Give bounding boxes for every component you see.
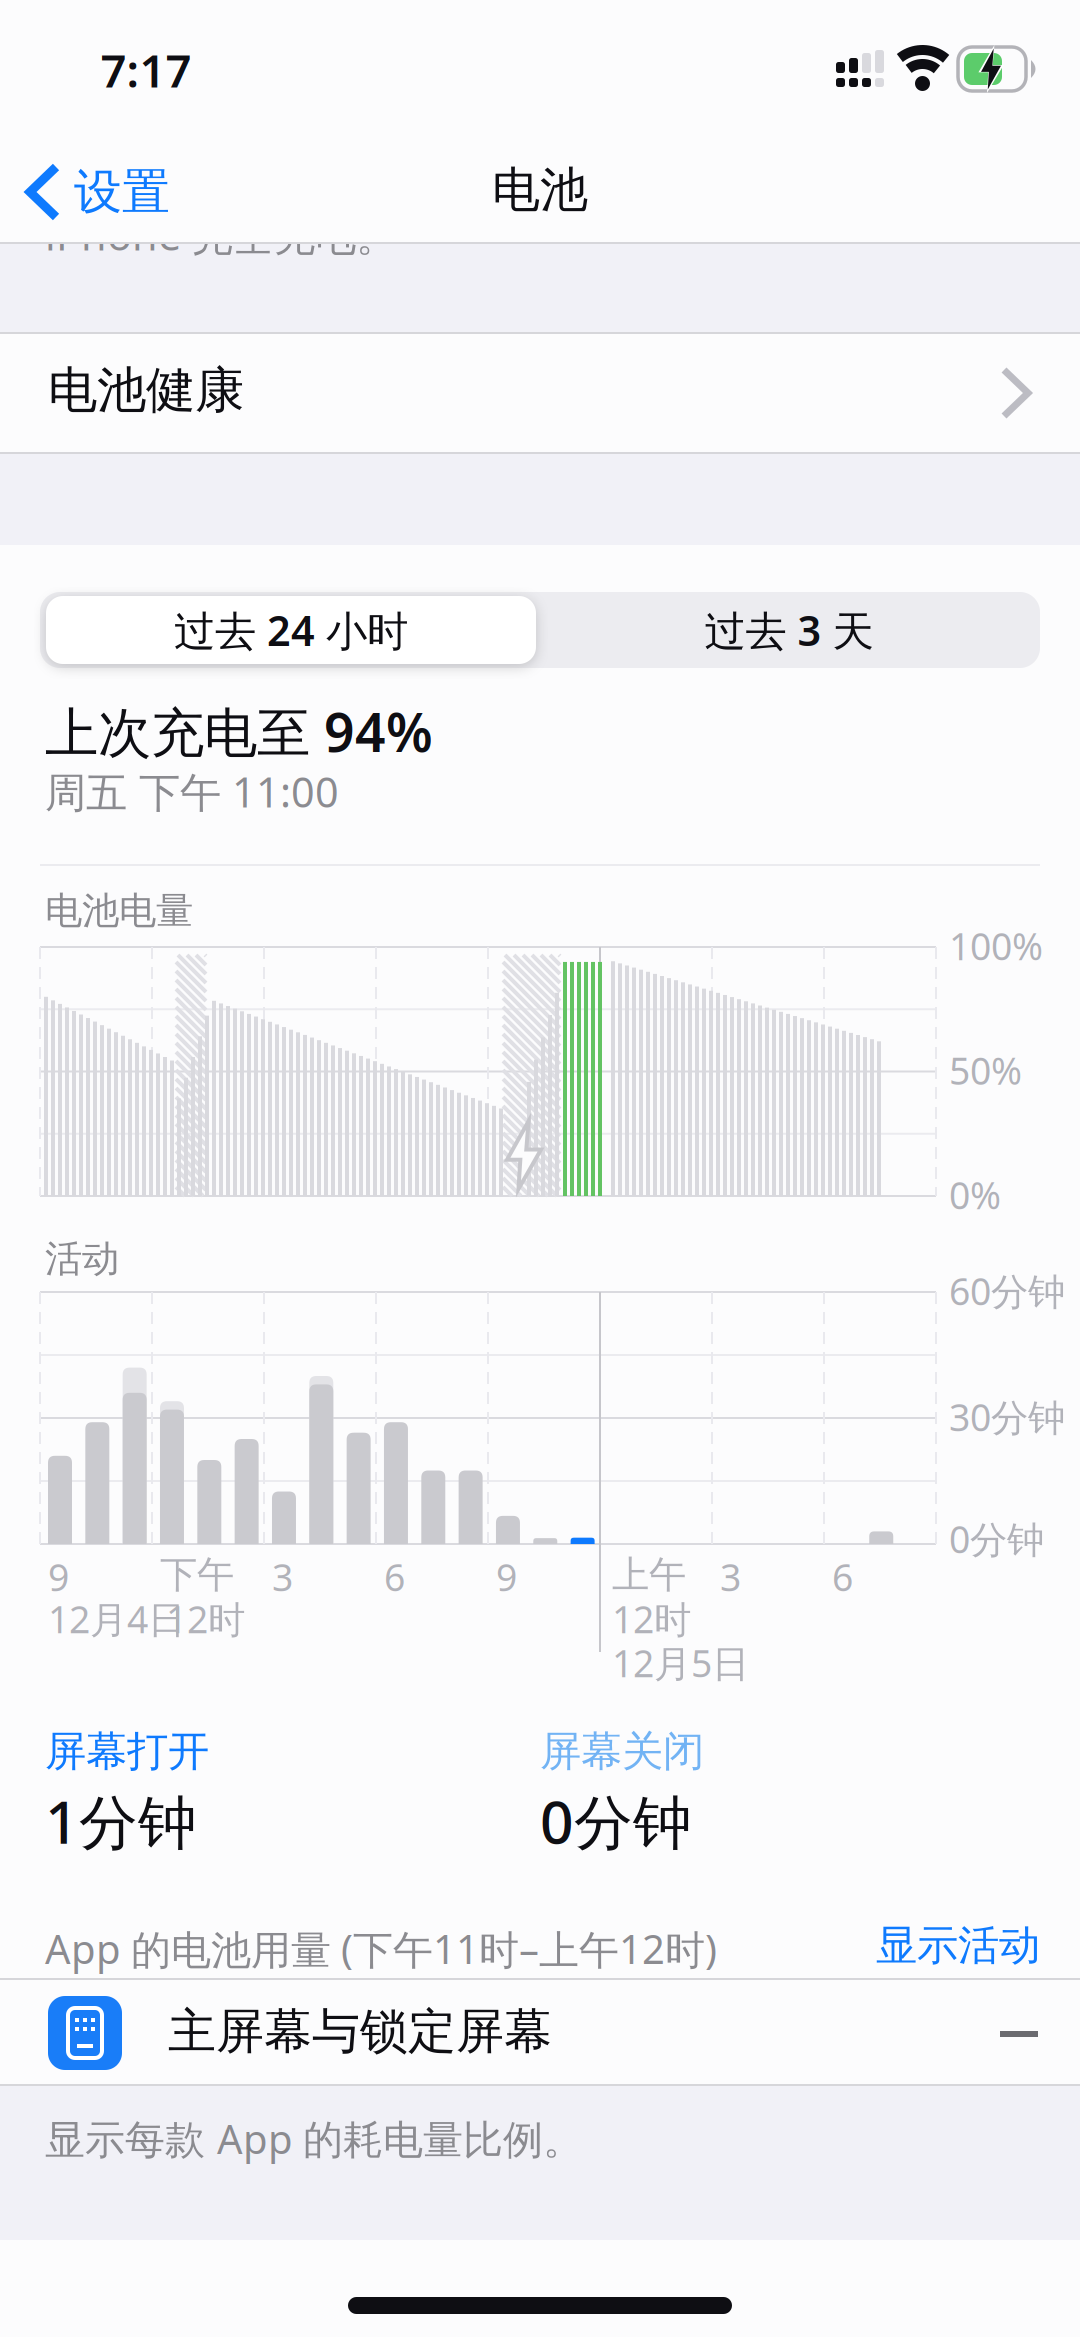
button[interactable]: 电池健康 <box>0 334 1080 452</box>
staticText: 主屏幕与锁定屏幕 <box>168 2002 552 2061</box>
staticText: 100% <box>949 921 1043 971</box>
button[interactable]: 主屏幕与锁定屏幕 <box>0 1980 1080 2086</box>
staticText: 0% <box>949 1170 1001 1220</box>
staticText: 屏幕打开 <box>45 1726 209 1777</box>
staticText: 50% <box>949 1045 1022 1095</box>
staticText: 上午 <box>612 1552 686 1598</box>
staticText: 显示每款 App 的耗电量比例。 <box>45 2112 583 2165</box>
staticText: 7:17 <box>100 40 191 100</box>
staticText: 电池电量 <box>45 888 193 934</box>
staticText: 过去 24 小时 <box>174 603 408 657</box>
staticText: 过去 3 天 <box>704 603 873 657</box>
staticText: 周五 下午 11:00 <box>45 764 339 819</box>
button[interactable]: 过去 3 天 <box>544 596 1034 664</box>
staticText: 0分钟 <box>540 1782 692 1860</box>
staticText: 9 <box>496 1552 517 1602</box>
button[interactable]: 设置 <box>26 152 170 232</box>
staticText: 1分钟 <box>45 1782 197 1860</box>
staticText: 12月5日 <box>612 1638 749 1688</box>
staticText: App 的电池用量 (下午11时–上午12时) <box>45 1922 717 1975</box>
staticText: 0分钟 <box>949 1514 1044 1564</box>
staticText: 屏幕关闭 <box>540 1726 704 1777</box>
staticText: 电池 <box>492 160 588 219</box>
staticText: 显示活动 <box>876 1920 1040 1971</box>
button[interactable]: 过去 24 小时 <box>46 596 536 664</box>
staticText: 电池健康 <box>48 360 244 421</box>
staticText: 上次充电至 94% <box>45 696 433 767</box>
staticText: 设置 <box>74 162 170 221</box>
staticText: 60分钟 <box>949 1266 1065 1316</box>
button[interactable]: 显示活动 <box>876 1920 1040 1971</box>
staticText: 6 <box>384 1552 405 1602</box>
staticText: 9 <box>48 1552 69 1602</box>
staticText: 12时 <box>612 1594 691 1644</box>
staticText: iPhone 完全充电。 <box>45 207 397 262</box>
staticText: 3 <box>272 1552 293 1602</box>
staticText: 12月4日 <box>48 1594 185 1644</box>
staticText: 12时 <box>166 1594 245 1644</box>
staticText: 6 <box>832 1552 853 1602</box>
staticText: 下午 <box>160 1552 234 1598</box>
staticText: 3 <box>720 1552 741 1602</box>
staticText: 30分钟 <box>949 1392 1065 1442</box>
staticText: 活动 <box>45 1236 119 1282</box>
